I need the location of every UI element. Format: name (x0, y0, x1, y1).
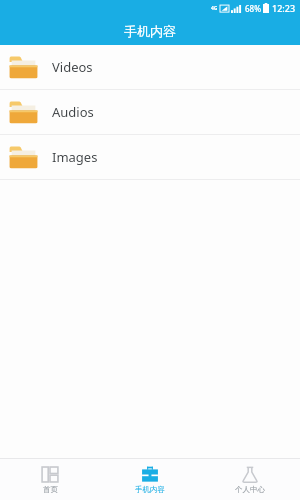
staticText: 首页 (43, 485, 58, 494)
button[interactable]: 首页 (0, 459, 100, 500)
button[interactable]: 手机内容 (100, 459, 200, 500)
staticText: 个人中心 (235, 485, 265, 494)
staticText: 12:23 (272, 2, 296, 14)
staticText: 4G (211, 5, 218, 12)
staticText: 手机内容 (124, 23, 176, 39)
button[interactable]: Videos (0, 45, 300, 89)
button[interactable]: Audios (0, 90, 300, 134)
staticText: 68% (245, 3, 261, 14)
staticText: Audios (52, 103, 94, 121)
button[interactable]: 个人中心 (200, 459, 300, 500)
staticText: 手机内容 (135, 485, 165, 494)
staticText: Videos (52, 58, 93, 76)
button[interactable]: Images (0, 135, 300, 179)
staticText: Images (52, 148, 98, 166)
